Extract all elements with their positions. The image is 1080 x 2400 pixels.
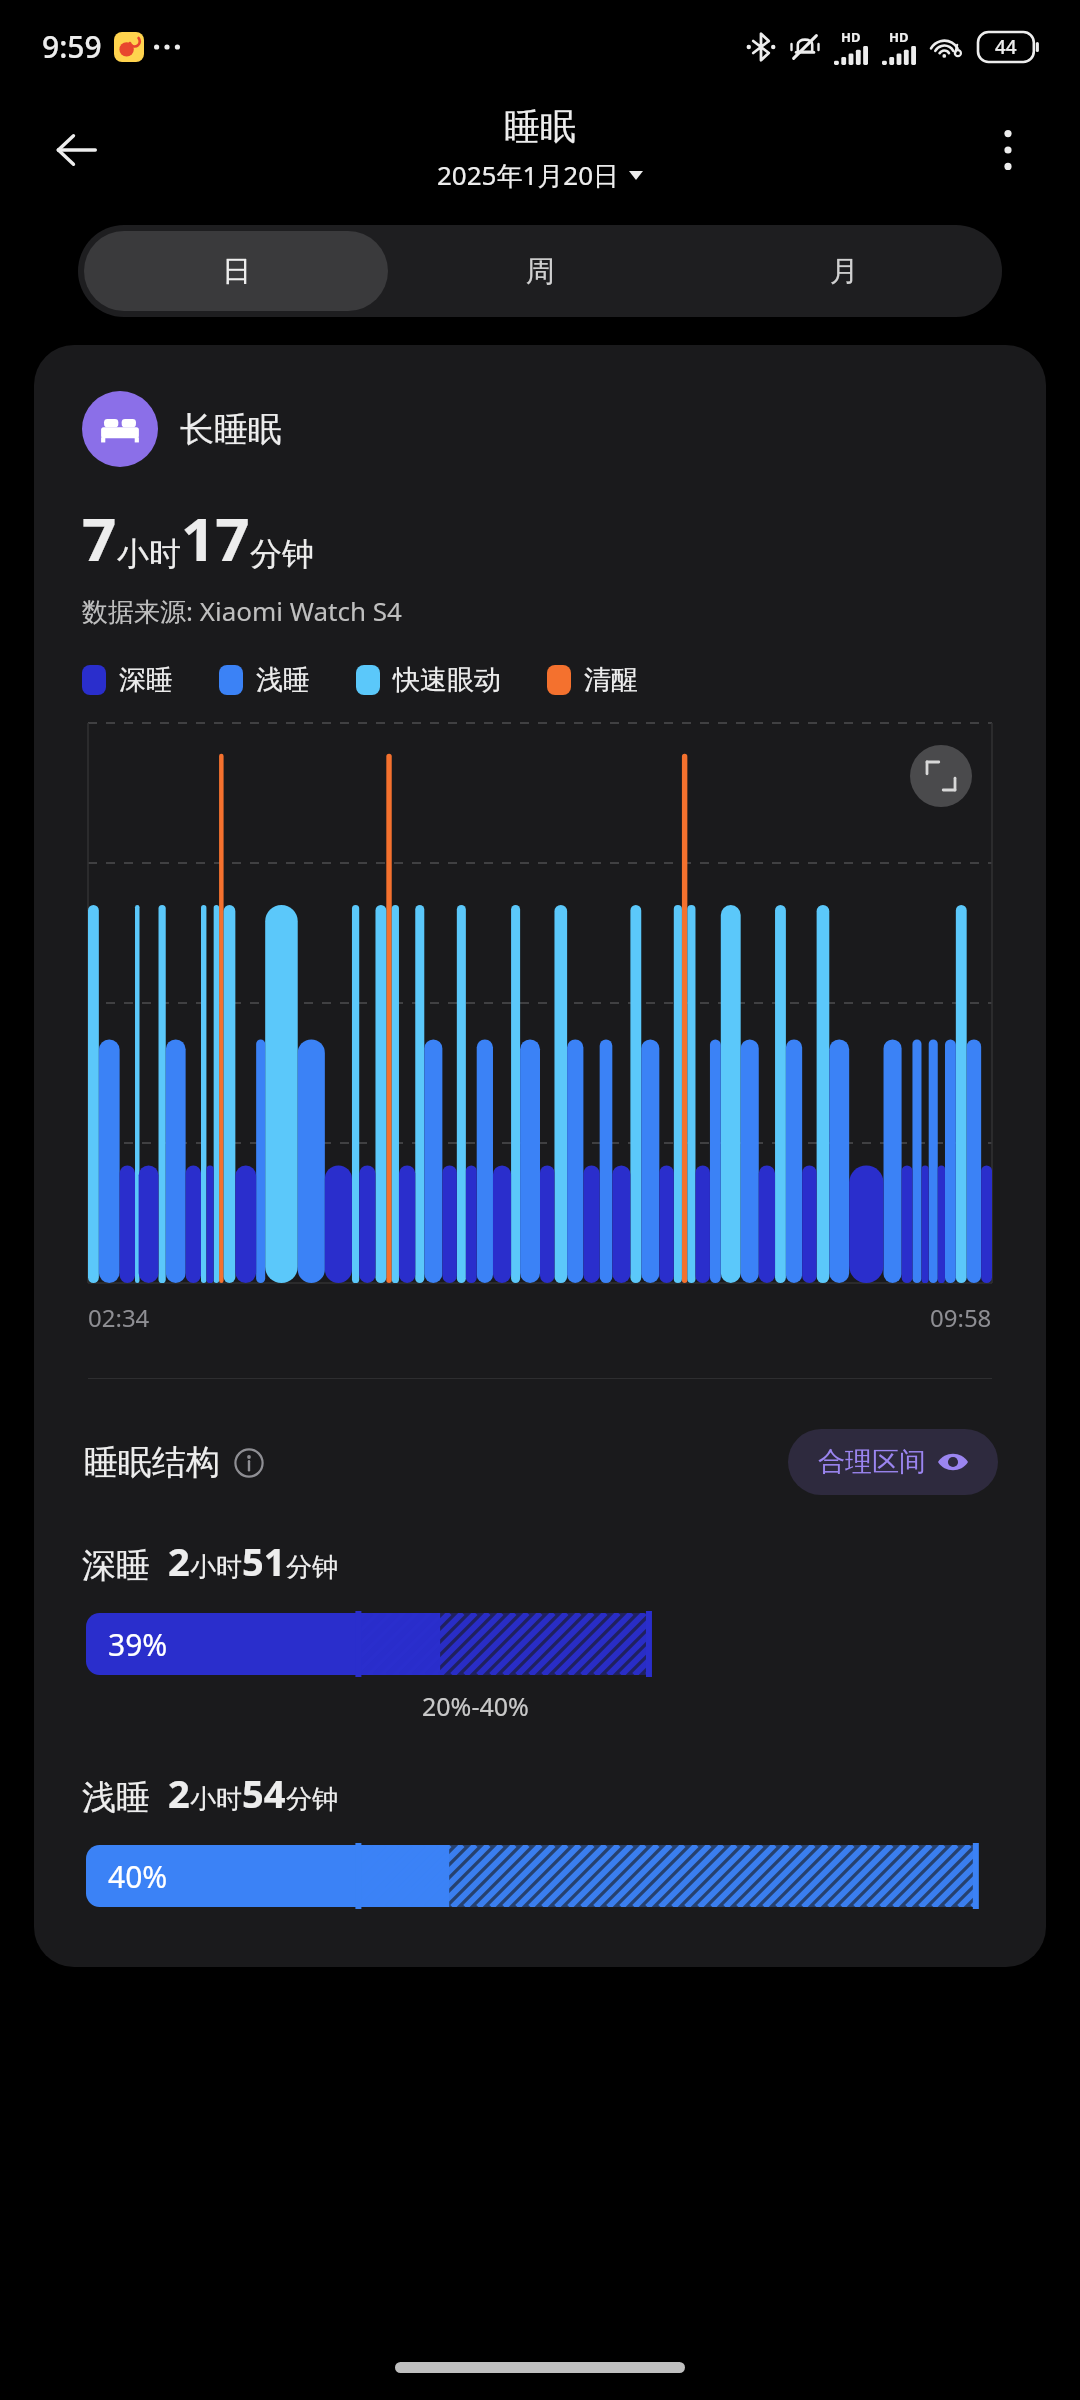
- staticText: 02:34: [88, 1301, 150, 1334]
- staticText: HD: [841, 28, 861, 46]
- staticText: 分钟: [286, 1783, 338, 1816]
- button[interactable]: 周: [388, 231, 692, 311]
- staticText: 周: [526, 253, 555, 290]
- staticText: 月: [830, 253, 859, 290]
- staticText: 20%-40%: [422, 1689, 529, 1723]
- button[interactable]: 睡眠结构: [82, 1439, 266, 1486]
- button[interactable]: 合理区间: [788, 1429, 998, 1495]
- staticText: 数据来源: Xiaomi Watch S4: [82, 593, 402, 629]
- button[interactable]: 长睡眠: [78, 387, 286, 471]
- button[interactable]: More options: [972, 114, 1044, 186]
- button[interactable]: 2025年1月20日: [433, 155, 647, 195]
- button[interactable]: Back: [38, 112, 114, 188]
- staticText: 小时: [190, 1783, 242, 1816]
- staticText: 日: [222, 253, 251, 290]
- staticText: 深睡: [119, 663, 173, 697]
- staticText: 睡眠结构: [84, 1441, 220, 1484]
- staticText: 2: [168, 1767, 190, 1819]
- staticText: 9:59: [42, 26, 102, 67]
- staticText: 7: [82, 497, 117, 579]
- staticText: 39%: [108, 1624, 168, 1665]
- staticText: 2025年1月20日: [437, 157, 620, 193]
- staticText: 40%: [108, 1856, 168, 1897]
- staticText: 浅睡: [256, 663, 310, 697]
- staticText: 深睡: [82, 1544, 150, 1587]
- staticText: 清醒: [584, 663, 638, 697]
- staticText: 小时: [190, 1551, 242, 1584]
- staticText: 合理区间: [818, 1445, 926, 1479]
- button[interactable]: 月: [692, 231, 996, 311]
- button[interactable]: Expand chart: [910, 745, 972, 807]
- staticText: 浅睡: [82, 1776, 150, 1819]
- staticText: 54: [242, 1767, 286, 1819]
- staticText: 2: [168, 1535, 190, 1587]
- staticText: 睡眠: [504, 104, 576, 149]
- staticText: 分钟: [250, 534, 314, 574]
- staticText: 17: [181, 497, 250, 579]
- staticText: 快速眼动: [393, 663, 501, 697]
- staticText: 分钟: [286, 1551, 338, 1584]
- staticText: 09:58: [930, 1301, 992, 1334]
- staticText: 44: [995, 34, 1017, 60]
- staticText: HD: [889, 28, 909, 46]
- staticText: 长睡眠: [180, 408, 282, 451]
- staticText: 小时: [117, 534, 181, 574]
- button[interactable]: 日: [84, 231, 388, 311]
- staticText: 51: [242, 1535, 286, 1587]
